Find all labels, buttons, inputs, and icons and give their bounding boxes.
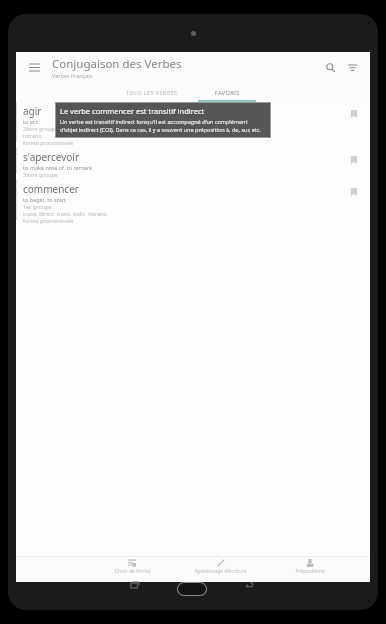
button[interactable]: Home [178, 583, 206, 595]
button[interactable]: Search [320, 57, 340, 77]
staticText: to act [23, 118, 38, 125]
button[interactable]: agir [16, 102, 370, 148]
staticText: Un verbe est transitif indirect lorsqu'i… [60, 118, 266, 134]
button[interactable]: Recents [124, 574, 146, 596]
staticText: forme pronominale [23, 217, 74, 224]
staticText: s'apercevoir [23, 150, 80, 164]
button[interactable]: Prépositions [265, 559, 354, 582]
button[interactable]: Bookmark [348, 186, 360, 198]
staticText: 3ème groupe [23, 171, 58, 178]
staticText: trans. direct trans. indir. intrans. [23, 210, 108, 217]
staticText: FAVORIS [215, 89, 240, 96]
button[interactable]: s'apercevoir [16, 148, 370, 180]
staticText: Conjugaison des Verbes [52, 56, 182, 72]
button[interactable]: Back [239, 574, 261, 596]
staticText: intrans. [23, 132, 43, 139]
staticText: agir [23, 104, 42, 118]
staticText: Prépositions [295, 568, 325, 575]
staticText: Le verbe commencer est transitif indirec… [60, 106, 205, 116]
staticText: Choix de forme [114, 568, 151, 575]
button[interactable]: Choix de forme [88, 559, 176, 582]
staticText: Apentissage d'écriture [194, 568, 247, 575]
button[interactable]: Sort [342, 57, 362, 77]
staticText: TOUS LES VERBES [126, 89, 178, 96]
button[interactable]: FAVORIS [192, 82, 262, 102]
staticText: Verbes Français [52, 72, 93, 79]
staticText: to make note of, to remark [23, 164, 93, 171]
button[interactable]: TOUS LES VERBES [112, 82, 192, 102]
button[interactable]: commencer [16, 180, 370, 226]
staticText: 2ème groupe [23, 125, 58, 132]
staticText: to begin, to start [23, 196, 67, 203]
button[interactable]: Bookmark [348, 108, 360, 120]
staticText: 1er groupe [23, 203, 52, 210]
staticText: commencer [23, 182, 79, 196]
button[interactable]: Bookmark [348, 154, 360, 166]
button[interactable]: Menu [24, 57, 44, 77]
button[interactable]: Apentissage d'écriture [176, 559, 265, 582]
staticText: forme pronominale [23, 139, 74, 146]
